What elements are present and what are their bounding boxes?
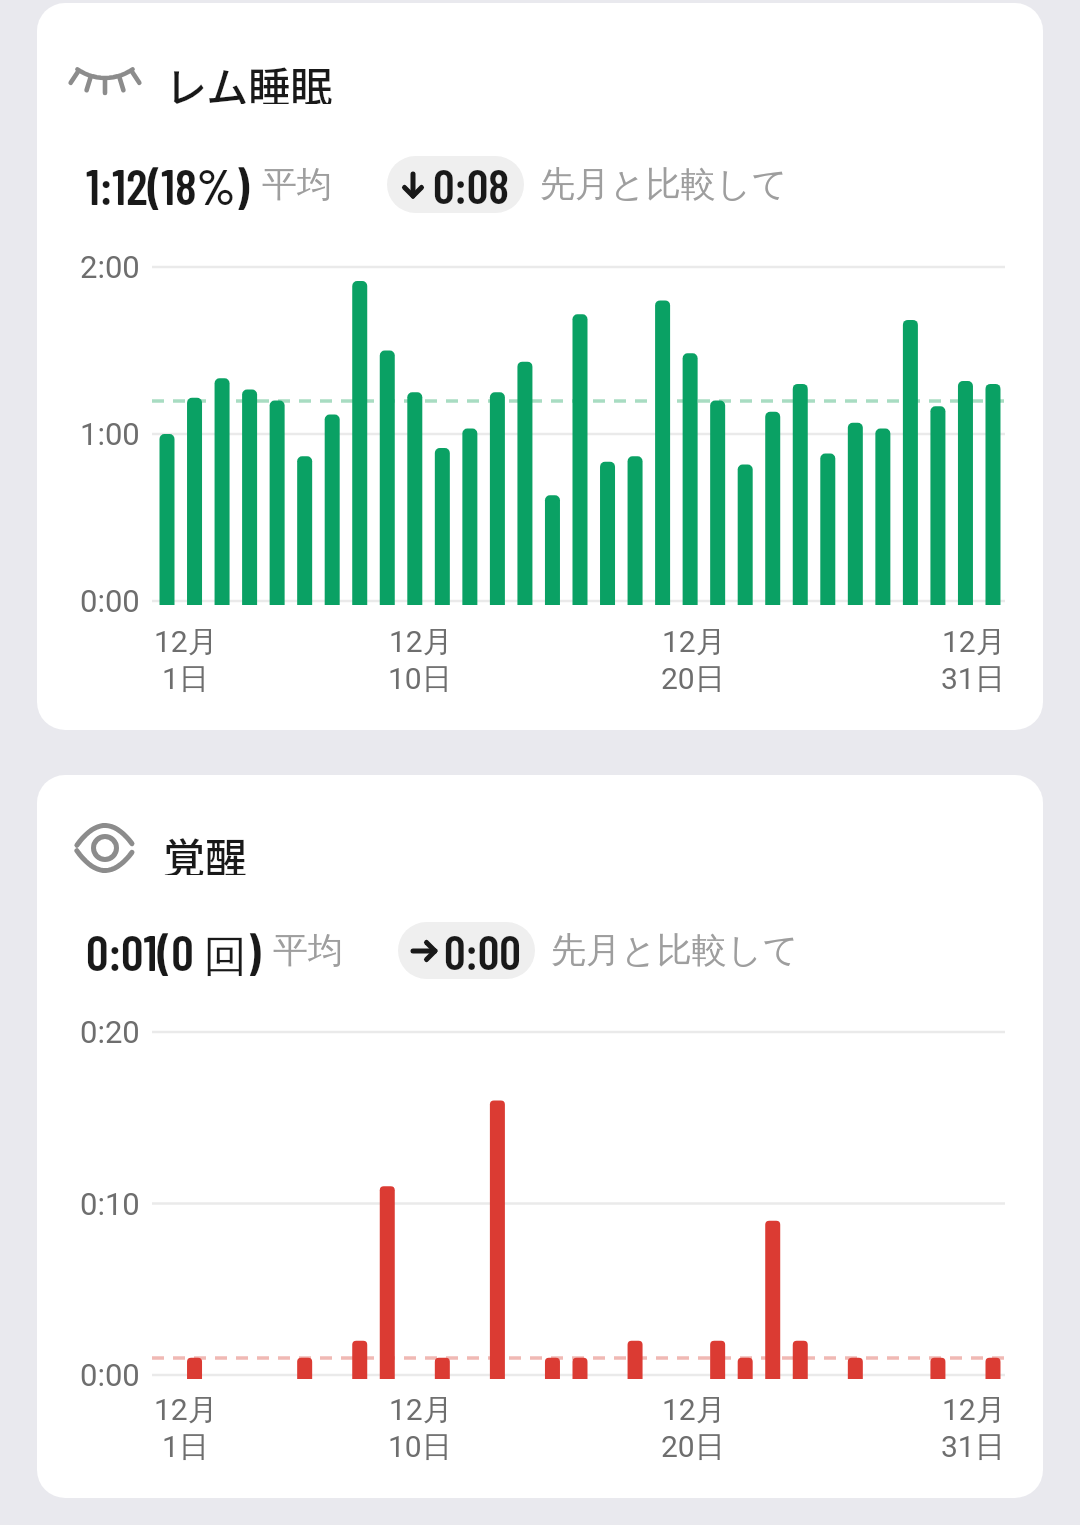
staticText: 0:00: [80, 1357, 140, 1393]
staticText: 20日: [661, 1428, 725, 1466]
staticText: 12月: [662, 623, 726, 661]
staticText: 0:10: [80, 1186, 140, 1222]
staticText: 0:08: [433, 156, 510, 213]
button[interactable]: [37, 3, 1043, 730]
staticText: 31日: [941, 660, 1005, 698]
staticText: 0:00: [80, 583, 140, 619]
staticText: 1:00: [80, 416, 140, 452]
staticText: 12月: [389, 1391, 453, 1429]
staticText: 12月: [154, 623, 218, 661]
staticText: 1日: [162, 660, 209, 698]
staticText: 0:01(0 回): [86, 921, 261, 979]
staticText: 0:20: [80, 1014, 140, 1050]
staticText: 12月: [389, 623, 453, 661]
staticText: 12月: [662, 1391, 726, 1429]
staticText: 0:00: [444, 922, 521, 979]
button[interactable]: 0:08: [387, 156, 524, 213]
staticText: 12月: [154, 1391, 218, 1429]
staticText: 先月と比較して: [540, 162, 788, 206]
button[interactable]: [37, 775, 1043, 1498]
staticText: 12月: [942, 1391, 1006, 1429]
staticText: 12月: [942, 623, 1006, 661]
staticText: 20日: [661, 660, 725, 698]
button[interactable]: 0:00: [398, 922, 535, 979]
staticText: 2:00: [80, 249, 140, 285]
staticText: レム睡眠: [165, 54, 333, 104]
staticText: 平均: [273, 928, 343, 972]
staticText: 10日: [388, 1428, 452, 1466]
staticText: 1:12(18%): [86, 155, 250, 213]
staticText: 先月と比較して: [551, 928, 799, 972]
staticText: 31日: [941, 1428, 1005, 1466]
staticText: 覚醒: [163, 825, 248, 875]
staticText: 1日: [162, 1428, 209, 1466]
staticText: 平均: [262, 162, 332, 206]
staticText: 10日: [388, 660, 452, 698]
